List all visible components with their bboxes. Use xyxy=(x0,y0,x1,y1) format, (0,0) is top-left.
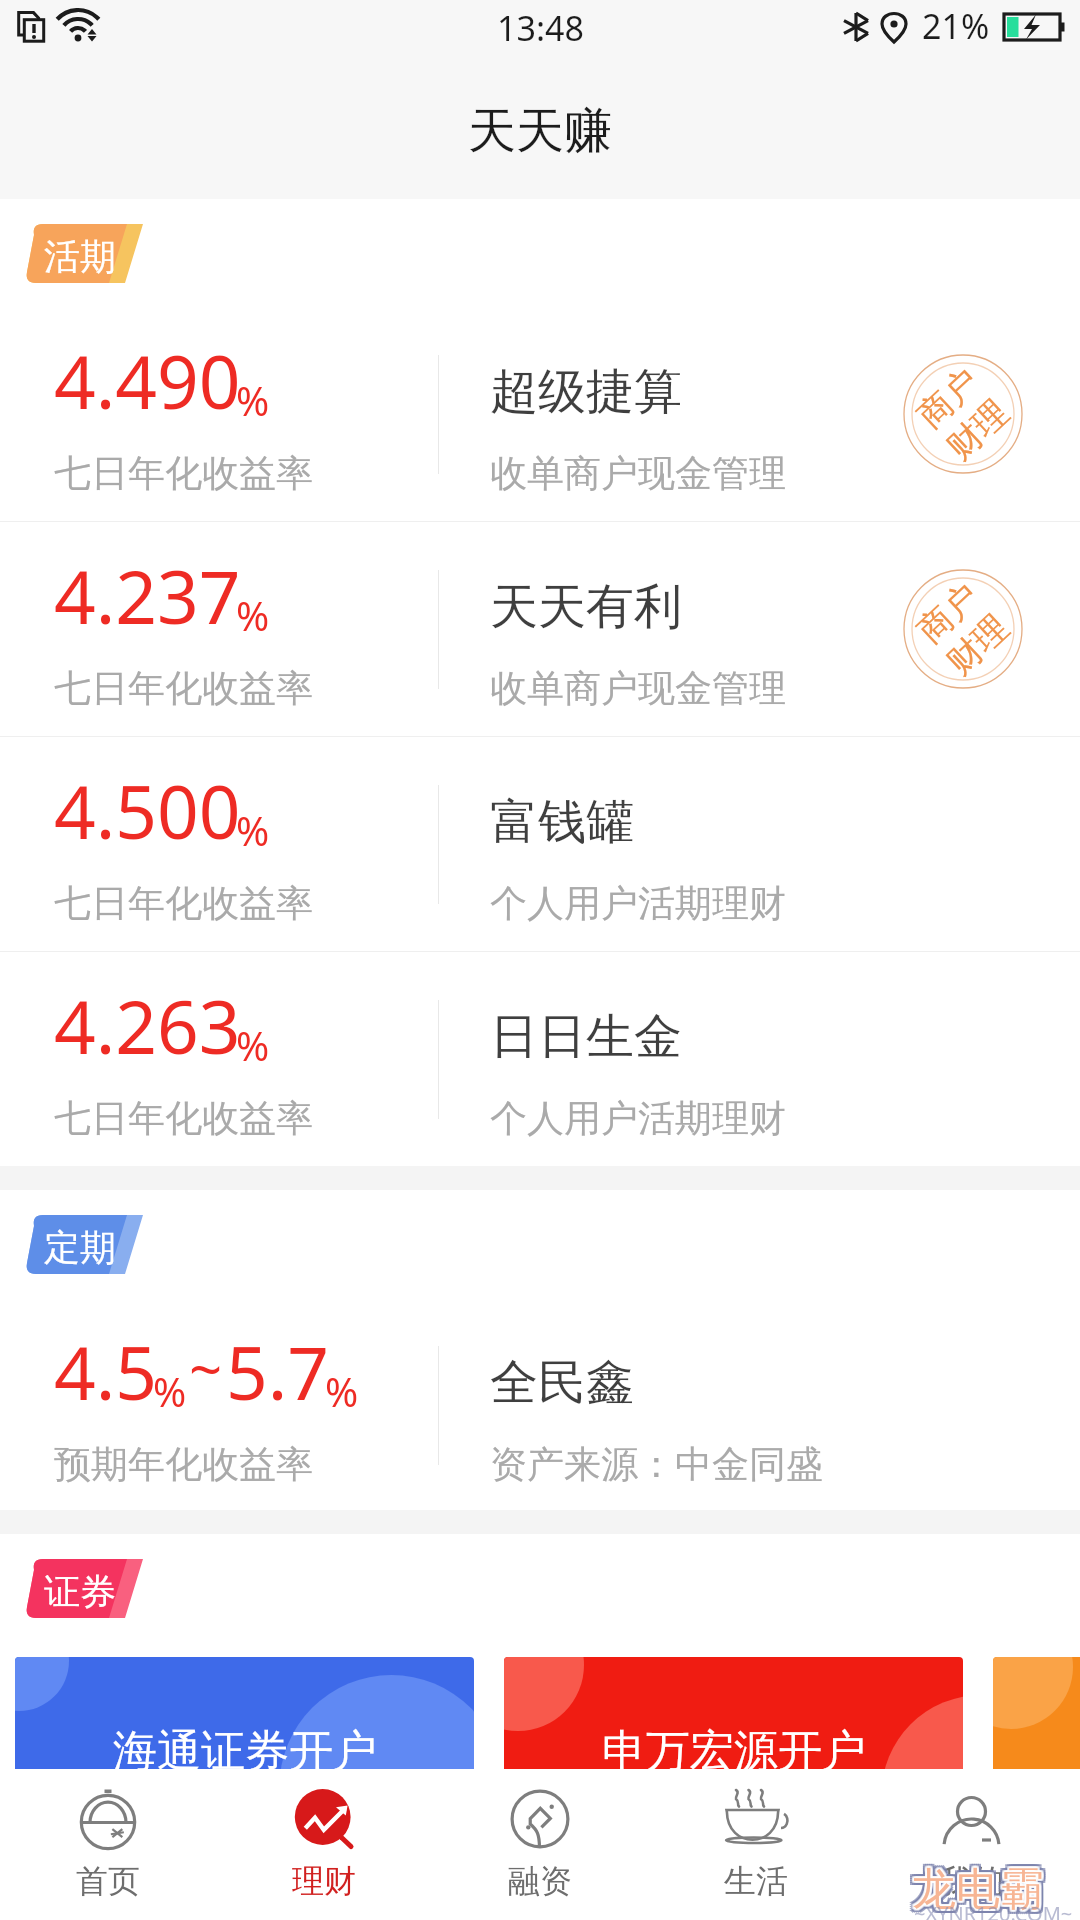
staticText: 生活 xyxy=(724,1861,788,1901)
staticText: % xyxy=(153,1364,187,1418)
staticText: % xyxy=(236,588,270,642)
staticText: 龙电霸 xyxy=(910,1862,1042,1917)
staticText: 七日年化收益率 xyxy=(54,450,313,497)
staticText: 龙电霸 xyxy=(911,1861,1043,1916)
button[interactable]: 融资 xyxy=(432,1769,648,1920)
staticText: 龙电霸 xyxy=(912,1861,1044,1916)
staticText: 龙电霸 xyxy=(910,1861,1042,1916)
button[interactable] xyxy=(993,1657,1080,1784)
button[interactable]: 我的 xyxy=(864,1769,1080,1920)
staticText: 天天有利 xyxy=(490,577,682,637)
button[interactable]: 理财 xyxy=(216,1769,432,1920)
staticText: 首页 xyxy=(76,1861,140,1901)
staticText: 财 xyxy=(938,629,992,684)
staticText: 龙电霸 xyxy=(910,1858,1042,1913)
staticText: 龙电霸 xyxy=(910,1862,1042,1917)
staticText: 富钱罐 xyxy=(490,792,634,852)
staticText: 龙电霸 xyxy=(908,1862,1040,1917)
button[interactable]: 4.500 xyxy=(0,737,1080,951)
staticText: 商 xyxy=(909,383,963,437)
staticText: 收单商户现金管理 xyxy=(490,450,786,497)
staticText: 龙电霸 xyxy=(916,1858,1048,1913)
staticText: 申万宏源开户 xyxy=(602,1724,866,1779)
staticText: ~ xyxy=(189,1329,223,1408)
staticText: 龙电霸 xyxy=(910,1863,1042,1918)
staticText: 证券 xyxy=(44,1569,116,1614)
staticText: 龙电霸 xyxy=(910,1864,1042,1919)
staticText: 龙电霸 xyxy=(913,1860,1045,1915)
staticText: 龙电霸 xyxy=(912,1864,1044,1919)
staticText: 龙电霸 xyxy=(913,1864,1045,1919)
staticText: 4.263 xyxy=(54,976,241,1075)
staticText: % xyxy=(236,1018,270,1072)
staticText: 龙电霸 xyxy=(916,1862,1048,1917)
staticText: 龙电霸 xyxy=(910,1864,1042,1919)
staticText: 龙电霸 xyxy=(912,1866,1044,1920)
staticText: 龙电霸 xyxy=(908,1866,1040,1920)
staticText: 龙电霸 xyxy=(914,1864,1046,1919)
staticText: 龙电霸 xyxy=(912,1862,1044,1917)
staticText: 龙电霸 xyxy=(908,1864,1040,1919)
button[interactable]: 首页 xyxy=(0,1769,216,1920)
staticText: 龙电霸 xyxy=(916,1866,1048,1920)
button[interactable]: 生活 xyxy=(648,1769,864,1920)
staticText: 龙电霸 xyxy=(913,1863,1045,1918)
staticText: 收单商户现金管理 xyxy=(490,665,786,712)
staticText: 七日年化收益率 xyxy=(54,1095,313,1142)
staticText: 龙电霸 xyxy=(914,1863,1046,1918)
staticText: 龙电霸 xyxy=(912,1864,1044,1919)
staticText: 龙电霸 xyxy=(914,1866,1046,1920)
staticText: 超级捷算 xyxy=(490,362,682,422)
staticText: 龙电霸 xyxy=(914,1860,1046,1915)
button[interactable]: 4.5 xyxy=(0,1298,1080,1510)
staticText: 个人用户活期理财 xyxy=(490,1095,786,1142)
staticText: 龙电霸 xyxy=(910,1866,1042,1920)
button[interactable]: 4.237 xyxy=(0,522,1080,736)
staticText: 全民鑫 xyxy=(490,1353,634,1413)
staticText: % xyxy=(325,1364,359,1418)
staticText: 龙电霸 xyxy=(913,1861,1045,1916)
button[interactable]: 海通证券开户 xyxy=(15,1657,474,1784)
staticText: 龙电霸 xyxy=(908,1860,1040,1915)
staticText: 龙电霸 xyxy=(911,1864,1043,1919)
staticText: 天天赚 xyxy=(468,101,612,161)
staticText: 预期年化收益率 xyxy=(54,1441,313,1488)
staticText: 5.7 xyxy=(226,1322,330,1421)
button[interactable]: 申万宏源开户 xyxy=(504,1657,963,1784)
staticText: 个人用户活期理财 xyxy=(490,880,786,927)
staticText: 日日生金 xyxy=(490,1007,682,1067)
button[interactable]: 4.263 xyxy=(0,952,1080,1166)
staticText: 4.490 xyxy=(54,331,241,430)
staticText: 龙电霸 xyxy=(914,1861,1046,1916)
staticText: 龙电霸 xyxy=(913,1862,1045,1917)
staticText: 活期 xyxy=(44,234,116,279)
staticText: 户 xyxy=(934,574,988,629)
staticText: 龙电霸 xyxy=(908,1858,1040,1913)
staticText: 4.5 xyxy=(54,1322,158,1421)
staticText: 户 xyxy=(934,359,988,414)
staticText: 定期 xyxy=(44,1225,116,1270)
staticText: 理 xyxy=(963,606,1017,660)
staticText: ~XYNR120.COM~ xyxy=(914,1900,1073,1920)
staticText: 龙电霸 xyxy=(912,1863,1044,1918)
staticText: 理财 xyxy=(292,1861,356,1901)
staticText: 龙电霸 xyxy=(910,1860,1042,1915)
staticText: 七日年化收益率 xyxy=(54,880,313,927)
staticText: 我的 xyxy=(940,1861,1004,1901)
staticText: 龙电霸 xyxy=(916,1864,1048,1919)
staticText: 龙电霸 xyxy=(912,1862,1044,1917)
button[interactable]: 4.490 xyxy=(0,307,1080,521)
staticText: 龙电霸 xyxy=(912,1860,1044,1915)
staticText: 龙电霸 xyxy=(914,1864,1046,1919)
staticText: 龙电霸 xyxy=(911,1862,1043,1917)
staticText: 龙电霸 xyxy=(912,1858,1044,1913)
staticText: 龙电霸 xyxy=(916,1860,1048,1915)
staticText: 融资 xyxy=(508,1861,572,1901)
staticText: 龙电霸 xyxy=(912,1862,1044,1917)
staticText: 龙电霸 xyxy=(914,1860,1046,1915)
staticText: 龙电霸 xyxy=(914,1862,1046,1917)
staticText: 21% xyxy=(922,3,990,49)
staticText: 龙电霸 xyxy=(911,1860,1043,1915)
staticText: 龙电霸 xyxy=(914,1858,1046,1913)
staticText: 13:48 xyxy=(497,5,584,51)
